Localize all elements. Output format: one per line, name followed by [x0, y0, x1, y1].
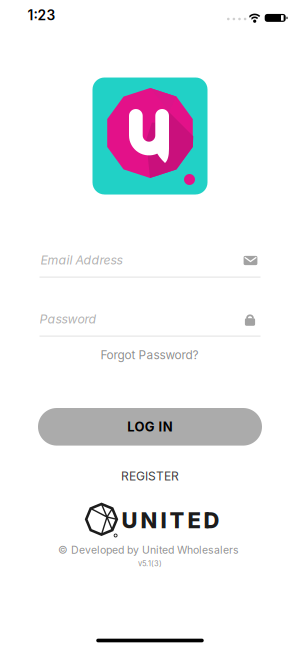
- button[interactable]: REGISTER: [121, 469, 179, 483]
- button[interactable]: Password: [39, 307, 260, 338]
- staticText: v5.1(3): [138, 559, 162, 568]
- staticText: REGISTER: [121, 469, 179, 483]
- staticText: UNITED: [121, 507, 219, 534]
- button[interactable]: LOG IN: [38, 408, 262, 446]
- button[interactable]: Forgot Password?: [100, 348, 198, 362]
- staticText: © Developed by United Wholesalers: [58, 544, 239, 556]
- staticText: Email Address: [40, 252, 122, 267]
- staticText: LOG IN: [127, 419, 173, 435]
- button[interactable]: Email Address: [39, 248, 260, 279]
- staticText: Forgot Password?: [100, 348, 198, 362]
- staticText: 1:23: [27, 7, 55, 24]
- staticText: Password: [39, 311, 96, 326]
